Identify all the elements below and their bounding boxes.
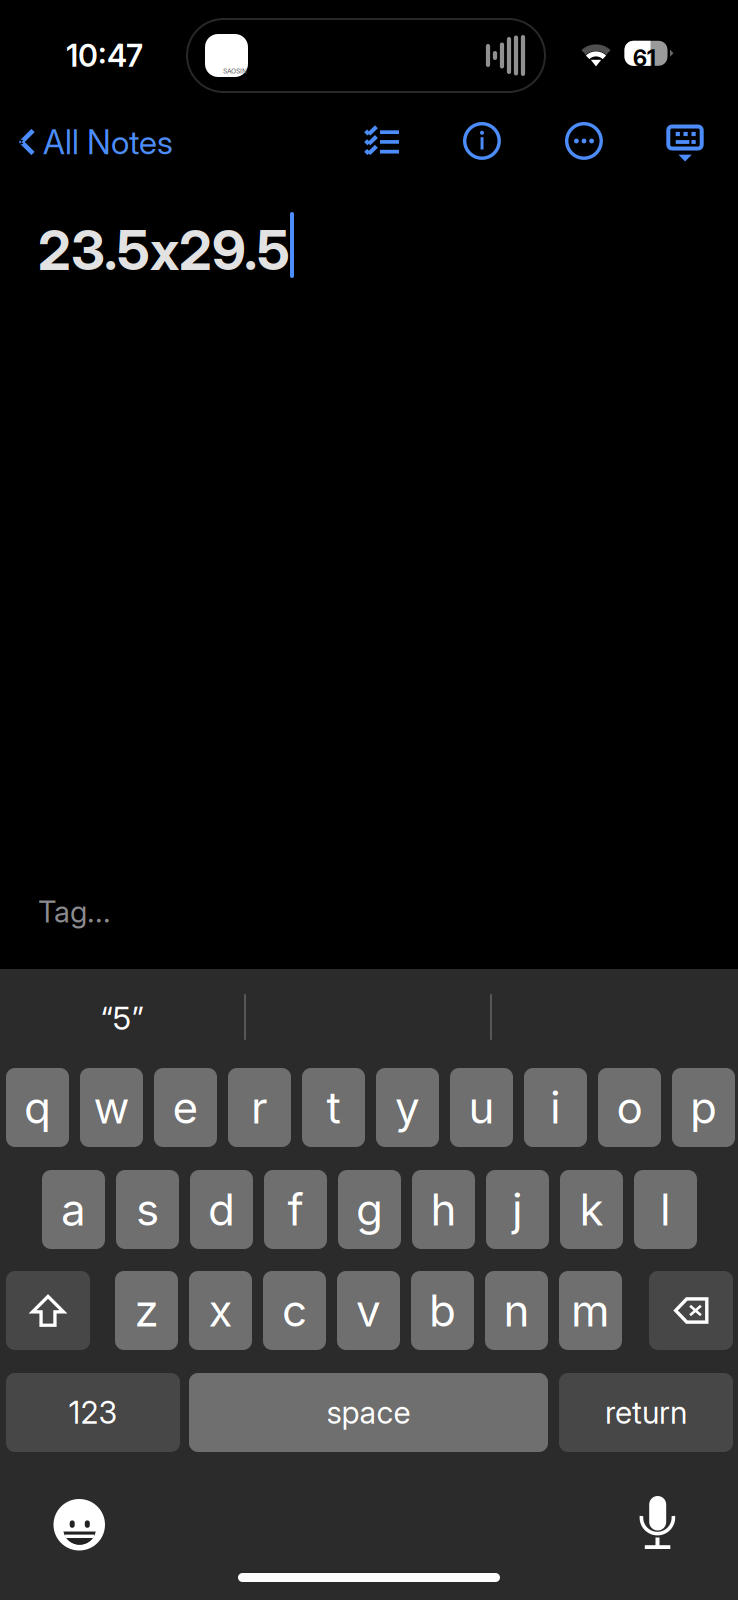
staticText: l [660, 1183, 671, 1236]
button[interactable]: Delete [649, 1271, 733, 1350]
staticText: d [208, 1183, 235, 1236]
button[interactable]: n [485, 1271, 548, 1350]
button[interactable]: b [411, 1271, 474, 1350]
button[interactable]: Dictate [639, 1496, 675, 1550]
button[interactable]: e [154, 1068, 217, 1147]
button[interactable]: g [338, 1170, 401, 1249]
button[interactable]: l [634, 1170, 697, 1249]
button[interactable]: More [550, 110, 618, 172]
staticText: c [282, 1284, 307, 1337]
staticText: All Notes [43, 122, 173, 162]
button[interactable]: s [116, 1170, 179, 1249]
button[interactable]: u [450, 1068, 513, 1147]
staticText: k [579, 1183, 603, 1236]
staticText: b [429, 1284, 456, 1337]
button[interactable]: All Notes [0, 110, 185, 174]
staticText: space [326, 1394, 410, 1431]
staticText: 61 [633, 44, 656, 72]
staticText: g [356, 1183, 383, 1236]
staticText: a [61, 1183, 86, 1236]
staticText: n [503, 1284, 529, 1337]
button[interactable]: w [80, 1068, 143, 1147]
staticText: x [208, 1284, 232, 1337]
button[interactable]: a [42, 1170, 105, 1249]
button[interactable]: r [228, 1068, 291, 1147]
button[interactable]: h [412, 1170, 475, 1249]
button[interactable]: o [598, 1068, 661, 1147]
staticText: Tag... [38, 894, 111, 929]
staticText: 23.5 [38, 217, 150, 283]
button[interactable]: y [376, 1068, 439, 1147]
button[interactable]: p [672, 1068, 735, 1147]
staticText: return [605, 1394, 687, 1431]
staticText: j [512, 1183, 523, 1236]
button[interactable]: j [486, 1170, 549, 1249]
staticText: s [136, 1183, 159, 1236]
staticText: r [251, 1081, 268, 1134]
staticText: 10:47 [66, 37, 143, 74]
staticText: i [550, 1081, 561, 1134]
staticText: “5” [100, 999, 143, 1037]
staticText: SAOSIN [223, 67, 247, 75]
staticText: x [150, 217, 179, 283]
button[interactable]: x [189, 1271, 252, 1350]
button[interactable]: “5” [0, 969, 244, 1067]
staticText: 29.5 [179, 217, 290, 283]
button[interactable]: Info [448, 110, 516, 172]
button[interactable]: d [190, 1170, 253, 1249]
staticText: w [93, 1081, 129, 1134]
staticText: 123 [68, 1394, 117, 1431]
button[interactable]: return [559, 1373, 733, 1452]
staticText: t [326, 1081, 340, 1134]
button[interactable]: f [264, 1170, 327, 1249]
button[interactable]: k [560, 1170, 623, 1249]
button[interactable]: v [337, 1271, 400, 1350]
staticText: e [172, 1081, 198, 1134]
button[interactable]: space [189, 1373, 548, 1452]
staticText: f [287, 1183, 303, 1236]
button[interactable]: z [115, 1271, 178, 1350]
staticText: p [690, 1081, 717, 1134]
button[interactable]: q [6, 1068, 69, 1147]
button[interactable]: Shift [6, 1271, 90, 1350]
staticText: z [134, 1284, 158, 1337]
button[interactable]: i [524, 1068, 587, 1147]
staticText: o [616, 1081, 642, 1134]
button[interactable]: c [263, 1271, 326, 1350]
button[interactable]: m [559, 1271, 622, 1350]
button[interactable]: Emoji [53, 1499, 105, 1550]
button[interactable]: Hide Keyboard [651, 112, 719, 174]
button[interactable]: 123 [6, 1373, 180, 1452]
staticText: u [468, 1081, 494, 1134]
staticText: m [571, 1284, 610, 1337]
button[interactable]: Checklist [348, 110, 416, 172]
staticText: v [356, 1284, 381, 1337]
staticText: h [430, 1183, 456, 1236]
button[interactable]: t [302, 1068, 365, 1147]
staticText: q [24, 1081, 51, 1134]
staticText: y [395, 1081, 420, 1134]
